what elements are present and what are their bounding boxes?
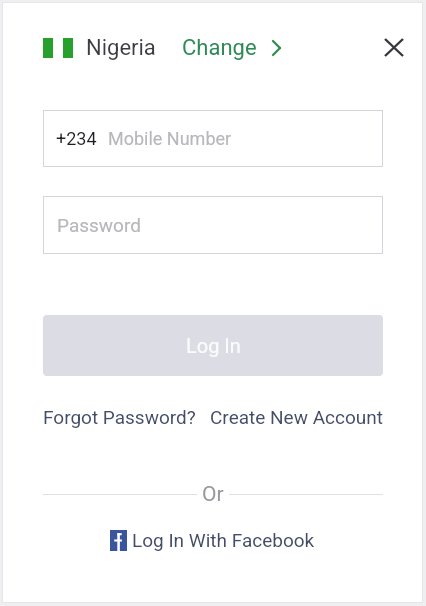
button[interactable]: Log In	[43, 315, 383, 376]
staticText: Nigeria	[86, 35, 156, 61]
staticText: Change	[182, 35, 257, 61]
staticText: Or	[202, 482, 224, 507]
staticText: Log In With Facebook	[132, 529, 315, 551]
button[interactable]: Forgot Password?	[43, 406, 196, 428]
button[interactable]: Password	[43, 196, 383, 254]
button[interactable]: Nigeria	[37, 29, 287, 67]
staticText: Log In	[186, 334, 241, 357]
staticText: Mobile Number	[108, 128, 232, 149]
button[interactable]: Log In With Facebook	[104, 523, 321, 557]
button[interactable]: Close	[372, 25, 416, 69]
button[interactable]: Create New Account	[210, 406, 383, 428]
button[interactable]: +234	[43, 110, 383, 167]
staticText: +234	[56, 128, 97, 149]
staticText: Password	[57, 214, 141, 236]
